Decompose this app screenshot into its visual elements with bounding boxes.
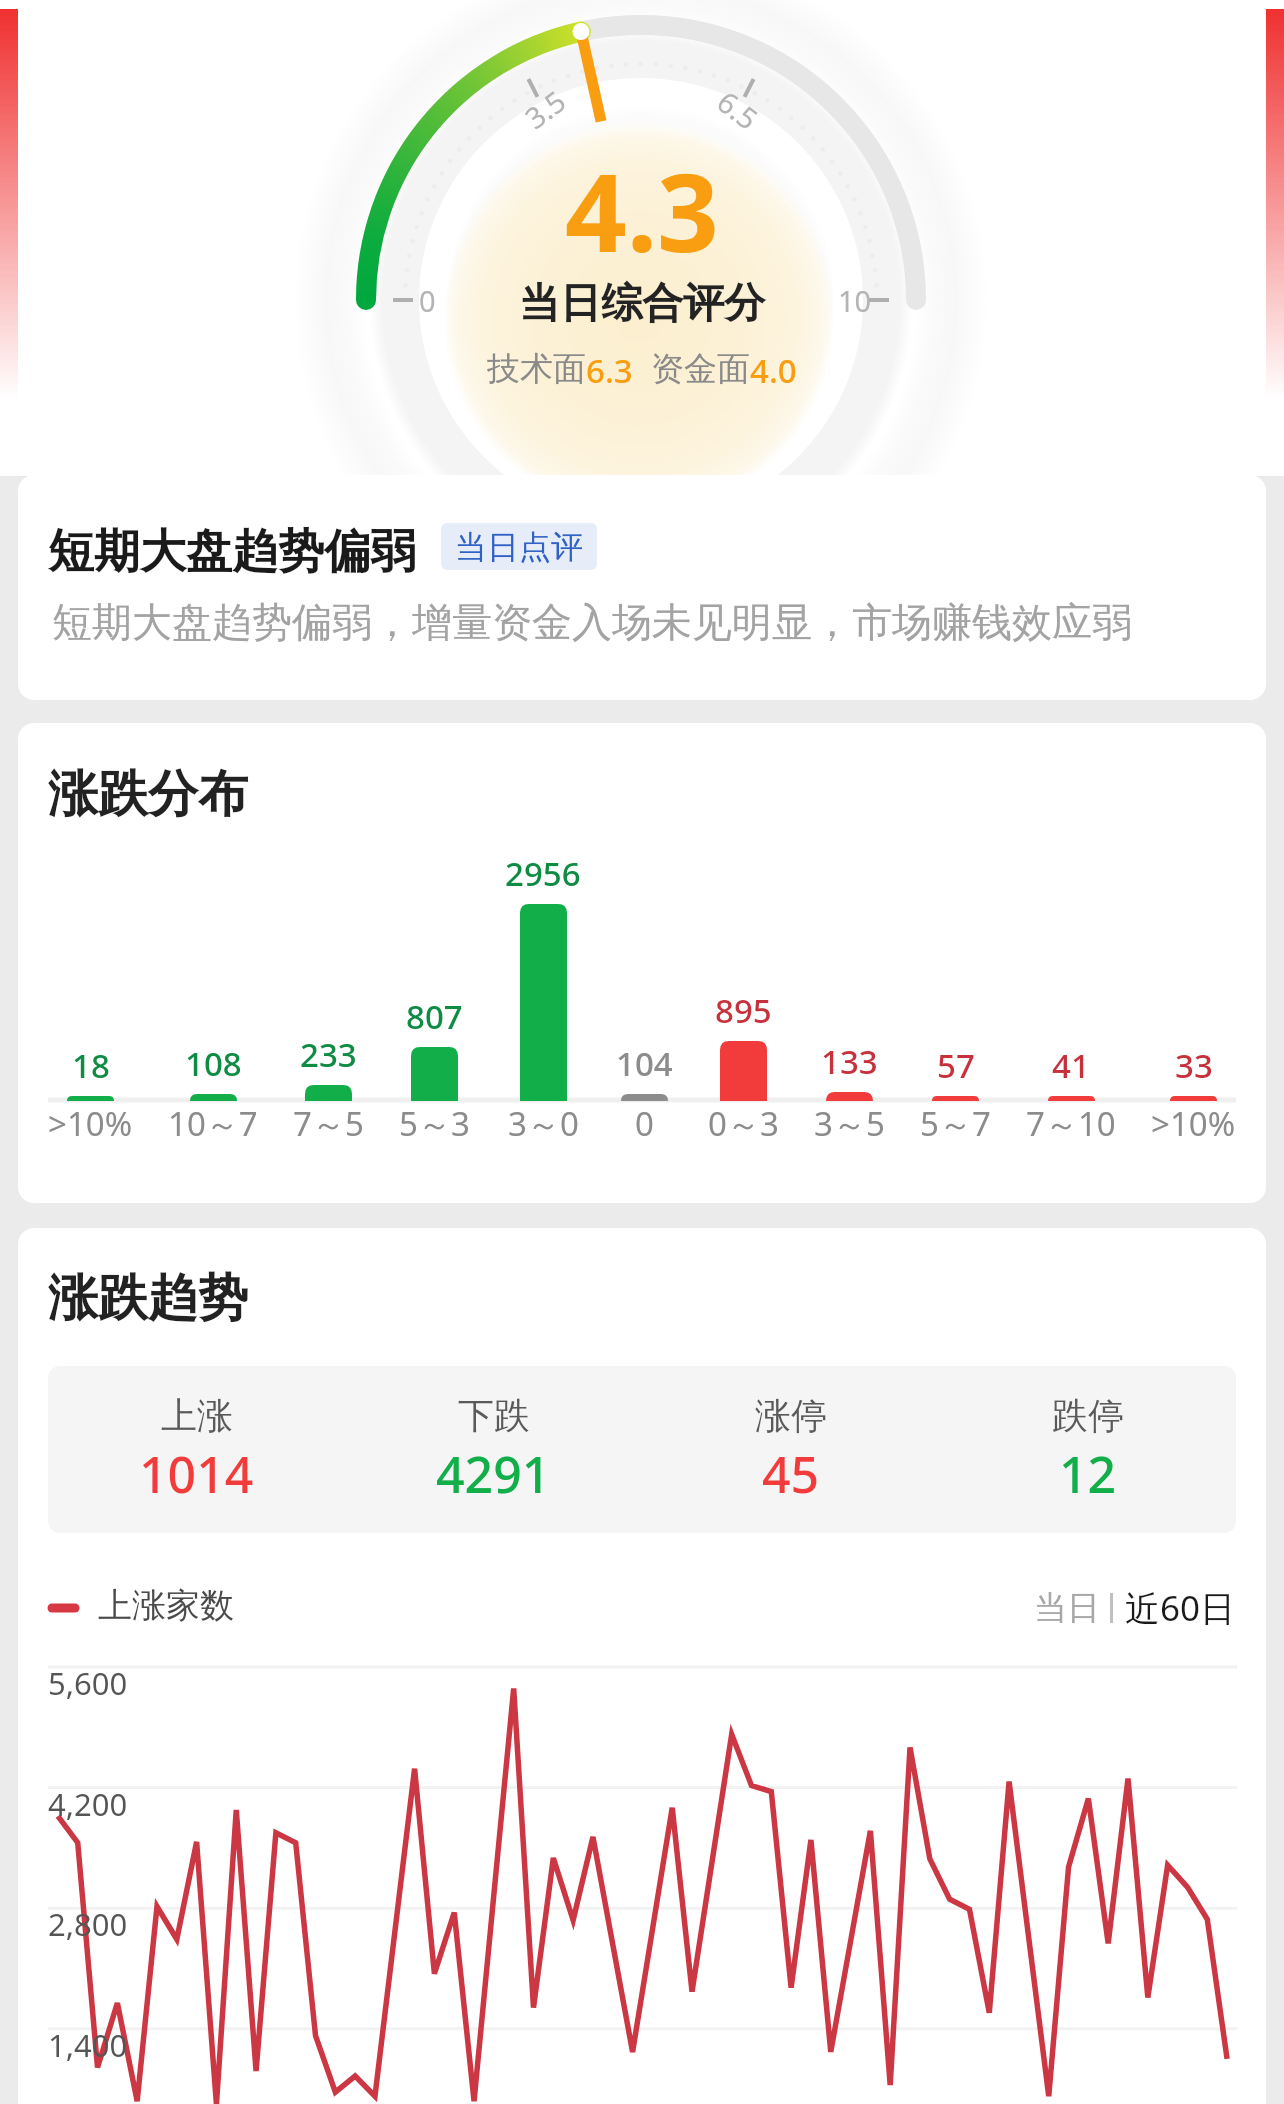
staticText: 18	[72, 1043, 110, 1088]
staticText: 233	[300, 1032, 357, 1077]
staticText: 3～0	[508, 1101, 579, 1146]
staticText: 2,800	[48, 1903, 128, 1945]
staticText: 4.3	[565, 137, 719, 284]
staticText: 0	[635, 1101, 654, 1146]
staticText: 33	[1175, 1043, 1213, 1088]
button[interactable]: 上涨	[48, 1366, 345, 1533]
button[interactable]: 近60日	[1113, 1584, 1236, 1632]
staticText: 资金面	[651, 348, 750, 390]
button[interactable]: 下跌	[345, 1366, 642, 1533]
staticText: 跌停	[1052, 1393, 1124, 1438]
staticText: 4.0	[750, 348, 797, 393]
staticText: 当日点评	[455, 527, 583, 567]
staticText: 下跌	[458, 1393, 530, 1438]
button[interactable]: 涨跌趋势	[18, 1228, 1266, 2104]
staticText: 上涨家数	[98, 1584, 234, 1627]
staticText: 3.5	[517, 81, 573, 137]
staticText: 4,200	[48, 1783, 128, 1825]
staticText: 短期大盘趋势偏弱，增量资金入场未见明显，市场赚钱效应弱	[52, 597, 1132, 647]
staticText: 3～5	[814, 1101, 885, 1146]
staticText: 2956	[505, 851, 581, 896]
staticText: 涨跌趋势	[48, 1267, 248, 1330]
staticText: 41	[1052, 1043, 1090, 1088]
staticText: 技术面	[487, 348, 586, 390]
staticText: 当日	[1034, 1587, 1100, 1629]
button[interactable]: 当日综合评分 4.3	[0, 0, 1284, 476]
button[interactable]: 涨跌分布	[18, 723, 1266, 1203]
staticText: 10～7	[168, 1101, 258, 1146]
staticText: 涨停	[755, 1393, 827, 1438]
staticText: 12	[1059, 1440, 1117, 1508]
staticText: 当日综合评分	[519, 278, 765, 330]
staticText: >10%	[1151, 1101, 1236, 1146]
staticText: 短期大盘趋势偏弱	[48, 523, 416, 581]
staticText: 涨跌分布	[48, 763, 248, 826]
button[interactable]: 当日	[1024, 1587, 1110, 1629]
button[interactable]: 跌停	[939, 1366, 1236, 1533]
staticText: 895	[715, 988, 772, 1033]
staticText: 807	[406, 994, 463, 1039]
staticText: 6.5	[710, 82, 766, 138]
staticText: 57	[937, 1043, 975, 1088]
staticText: 104	[616, 1041, 673, 1086]
staticText: 近60日	[1125, 1584, 1236, 1632]
button[interactable]: 短期大盘趋势偏弱	[18, 475, 1266, 700]
staticText: 45	[762, 1440, 820, 1508]
staticText: 5～7	[920, 1101, 991, 1146]
staticText: 5～3	[399, 1101, 470, 1146]
staticText: >10%	[48, 1101, 133, 1146]
staticText: 7～5	[293, 1101, 364, 1146]
staticText: 6.3	[586, 348, 633, 393]
staticText: 108	[185, 1041, 242, 1086]
button[interactable]: 涨停	[642, 1366, 939, 1533]
staticText: 133	[821, 1039, 878, 1084]
staticText: 1014	[139, 1440, 254, 1508]
staticText: 0～3	[708, 1101, 779, 1146]
staticText: 上涨	[161, 1393, 233, 1438]
staticText: 10	[838, 281, 872, 320]
staticText: 4291	[436, 1440, 551, 1508]
staticText: 1,400	[48, 2024, 128, 2066]
staticText: 7～10	[1026, 1101, 1116, 1146]
staticText: 5,600	[48, 1662, 128, 1704]
staticText: 0	[419, 281, 436, 320]
